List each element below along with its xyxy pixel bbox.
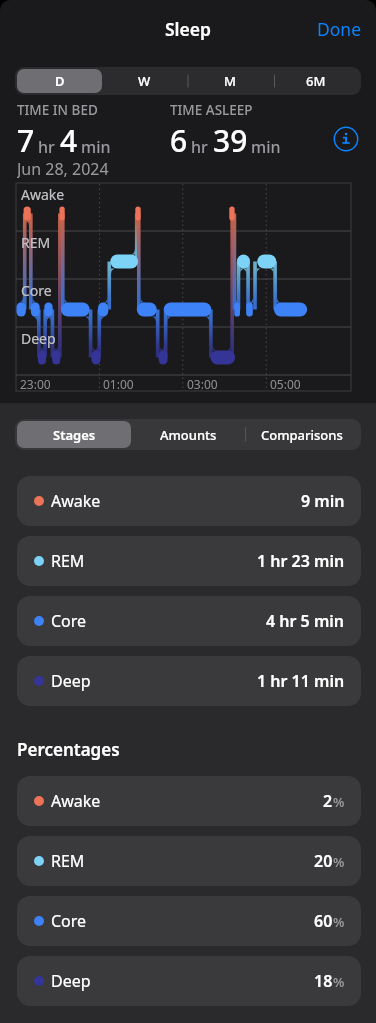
staticText: 9 min: [301, 490, 345, 512]
staticText: Core: [21, 281, 52, 300]
staticText: 6: [170, 120, 188, 161]
staticText: 1 hr 23 min: [257, 550, 345, 572]
staticText: Deep: [51, 970, 91, 992]
button[interactable]: Stages: [17, 421, 131, 448]
staticText: min: [251, 136, 281, 158]
staticText: 1 hr 11 min: [257, 670, 345, 692]
button[interactable]: Amounts: [131, 421, 245, 448]
staticText: Percentages: [17, 738, 120, 761]
staticText: 20: [314, 850, 333, 872]
button[interactable]: D: [17, 69, 102, 93]
staticText: 2: [323, 790, 333, 812]
staticText: %: [333, 973, 345, 991]
staticText: TIME ASLEEP: [170, 101, 253, 119]
staticText: %: [333, 793, 345, 811]
staticText: M: [224, 72, 236, 90]
staticText: 39: [213, 120, 248, 161]
button[interactable]: M: [187, 69, 273, 93]
staticText: D: [55, 72, 65, 90]
staticText: %: [333, 913, 345, 931]
staticText: W: [138, 72, 151, 90]
staticText: Done: [317, 17, 362, 41]
staticText: 4 hr 5 min: [266, 610, 345, 632]
staticText: 6M: [306, 72, 326, 90]
staticText: 03:00: [187, 376, 218, 392]
button[interactable]: Core: [17, 896, 361, 946]
button[interactable]: REM: [17, 836, 361, 886]
staticText: min: [81, 136, 111, 158]
button[interactable]: Deep: [17, 656, 361, 706]
staticText: Sleep: [165, 17, 212, 41]
button[interactable]: Awake: [17, 776, 361, 826]
button[interactable]: Core: [17, 596, 361, 646]
button[interactable]: 6M: [273, 69, 359, 93]
staticText: 05:00: [270, 376, 301, 392]
staticText: 4: [60, 120, 78, 161]
staticText: hr: [38, 136, 55, 158]
button[interactable]: Done: [303, 7, 376, 51]
staticText: Jun 28, 2024: [17, 158, 109, 178]
staticText: Awake: [51, 790, 101, 812]
staticText: 60: [314, 910, 333, 932]
staticText: Awake: [51, 490, 101, 512]
staticText: Core: [51, 910, 87, 932]
staticText: REM: [51, 850, 85, 872]
staticText: Stages: [53, 426, 96, 444]
staticText: 01:00: [103, 376, 134, 392]
button[interactable]: Awake: [17, 476, 361, 526]
staticText: Deep: [51, 670, 91, 692]
button[interactable]: W: [102, 69, 187, 93]
button[interactable]: REM: [17, 536, 361, 586]
staticText: hr: [191, 136, 208, 158]
staticText: Amounts: [160, 426, 217, 444]
staticText: 18: [314, 970, 333, 992]
staticText: Core: [51, 610, 87, 632]
staticText: Awake: [21, 185, 65, 204]
staticText: REM: [51, 550, 85, 572]
staticText: TIME IN BED: [17, 101, 98, 119]
button[interactable]: Deep: [17, 956, 361, 1006]
staticText: Deep: [21, 329, 56, 348]
staticText: REM: [21, 233, 51, 252]
button[interactable]: Info: [333, 126, 359, 152]
staticText: 23:00: [20, 376, 51, 392]
staticText: Comparisons: [261, 426, 343, 444]
staticText: %: [333, 853, 345, 871]
staticText: 7: [17, 120, 35, 161]
button[interactable]: Comparisons: [245, 421, 359, 448]
